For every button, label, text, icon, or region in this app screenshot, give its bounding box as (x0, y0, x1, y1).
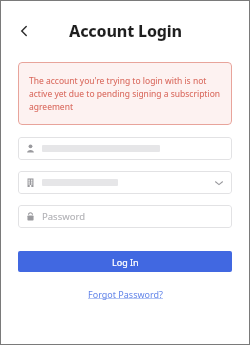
button[interactable] (18, 137, 232, 160)
button[interactable]: Back (10, 17, 38, 45)
staticText: The account you're trying to login with … (29, 75, 221, 113)
button[interactable]: Forgot Password? (84, 286, 167, 302)
staticText: Log In (112, 256, 139, 268)
staticText: Password (42, 210, 85, 223)
staticText: Account Login (69, 20, 182, 42)
button[interactable]: Log In (18, 251, 232, 272)
button[interactable]: Password (18, 205, 232, 228)
button[interactable] (18, 171, 232, 194)
